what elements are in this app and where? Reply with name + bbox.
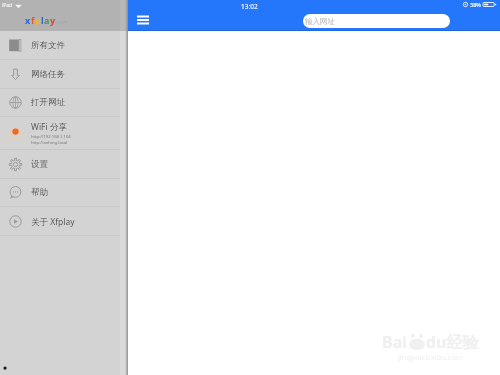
staticText: Bai (382, 331, 408, 353)
button[interactable]: iPad (0, 0, 128, 31)
staticText: 关于 Xfplay (31, 216, 75, 228)
staticText: 所有文件 (31, 40, 65, 51)
button[interactable]: 打开网址 (0, 88, 128, 117)
staticText: f (31, 14, 35, 26)
staticText: 38% (470, 1, 481, 8)
staticText: 设置 (31, 159, 48, 170)
staticText: 输入网址 (305, 17, 335, 26)
staticText: 网络任务 (31, 69, 65, 80)
button[interactable]: WiFi 分享 (0, 117, 128, 150)
staticText: a (44, 14, 50, 26)
staticText: WiFi 分享 (31, 121, 67, 133)
staticText: 打开网址 (31, 97, 65, 108)
button[interactable]: Menu (137, 13, 151, 26)
button[interactable]: 设置 (0, 150, 128, 179)
staticText: jingyan.baidu.com (398, 352, 463, 362)
button[interactable]: 所有文件 (0, 31, 128, 60)
button[interactable]: 网络任务 (0, 60, 128, 89)
staticText: 帮助 (31, 187, 48, 198)
button[interactable]: 关于 Xfplay (0, 207, 128, 236)
staticText: 13:02 (241, 2, 258, 11)
staticText: x (25, 14, 31, 26)
staticText: p (35, 14, 41, 26)
staticText: http://anhing.local (31, 140, 68, 146)
staticText: iPad (2, 2, 13, 9)
staticText: y (50, 14, 56, 26)
staticText: http://192.168.1.104 (31, 134, 71, 140)
staticText: du经验 (426, 331, 479, 353)
staticText: l (41, 14, 44, 26)
button[interactable]: 输入网址 (303, 14, 450, 28)
button[interactable]: 帮助 (0, 178, 128, 207)
